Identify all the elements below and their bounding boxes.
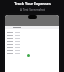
staticText: Track Your Expenses — [14, 1, 51, 6]
button[interactable]: Add — [27, 54, 30, 57]
staticText: A Test Screenshot — [20, 8, 45, 12]
